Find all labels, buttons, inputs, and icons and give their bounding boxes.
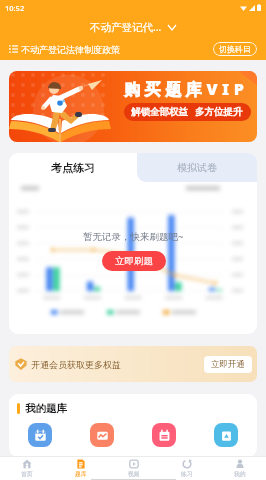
button[interactable]: 立即刷题 [102, 251, 166, 271]
staticText: 视频 [128, 470, 140, 477]
button[interactable]: 模拟试卷 [137, 153, 257, 182]
button[interactable]: 首页 [0, 457, 54, 478]
staticText: 购买题库VIP [124, 78, 249, 100]
staticText: 多方位提升 [195, 106, 243, 118]
staticText: 解锁全部权益 [131, 106, 188, 118]
button[interactable]: 我的 [213, 457, 266, 478]
button[interactable]: 购买题库VIP [9, 71, 257, 142]
staticText: 我的 [234, 470, 246, 477]
button[interactable]: 考点练习 [9, 153, 137, 182]
button[interactable]: 我的收藏 [90, 423, 114, 447]
button[interactable]: 做题记录 [214, 423, 238, 447]
staticText: 切换科目 [219, 44, 251, 54]
button[interactable]: 每日一练 [28, 423, 52, 447]
button[interactable]: 开通会员获取更多权益 [9, 346, 257, 382]
staticText: 立即开通 [211, 359, 245, 370]
button[interactable]: 切换科目 [213, 42, 257, 56]
staticText: 我的题库 [25, 402, 67, 415]
staticText: 立即刷题 [115, 255, 153, 267]
staticText: 不动产登记法律制度政策 [21, 44, 120, 55]
staticText: 题库 [75, 470, 87, 477]
button[interactable]: 练习 [160, 457, 213, 478]
staticText: 练习 [181, 470, 193, 477]
staticText: 考点练习 [51, 161, 95, 175]
button[interactable]: 视频 [107, 457, 160, 478]
staticText: 10:52 [5, 3, 25, 13]
staticText: 不动产登记代… [90, 20, 162, 34]
staticText: 开通会员获取更多权益 [31, 359, 121, 370]
staticText: 模拟试卷 [177, 161, 217, 174]
button[interactable]: 错题本 [152, 423, 176, 447]
button[interactable]: 立即开通 [204, 356, 252, 373]
button[interactable]: 题库 [54, 457, 107, 478]
staticText: 暂无记录，快来刷题吧~ [83, 230, 184, 243]
staticText: 首页 [21, 470, 33, 477]
